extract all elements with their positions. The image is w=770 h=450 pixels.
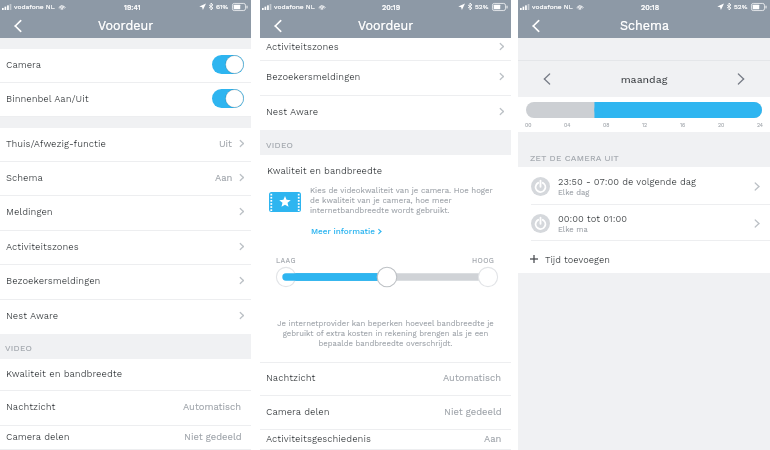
staticText: Niet gedeeld bbox=[444, 406, 502, 417]
staticText: Thuis/Afwezig-functie bbox=[6, 138, 106, 149]
staticText: 19:41 bbox=[124, 3, 141, 11]
staticText: Automatisch bbox=[183, 401, 242, 412]
staticText: Voordeur bbox=[358, 18, 414, 33]
button[interactable]: Back bbox=[260, 13, 296, 38]
staticText: Camera delen bbox=[6, 431, 70, 442]
staticText: Nachtzicht bbox=[6, 401, 56, 412]
button[interactable]: Binnenbel Aan/Uit bbox=[0, 83, 251, 117]
staticText: Schema bbox=[6, 172, 43, 183]
staticText: Schema bbox=[620, 18, 669, 33]
button[interactable]: Back bbox=[518, 13, 554, 38]
staticText: Meer informatie bbox=[311, 226, 375, 236]
button[interactable]: Back bbox=[0, 13, 36, 38]
button[interactable]: Activiteitsgeschiedenis bbox=[260, 430, 511, 450]
staticText: Kies de videokwaliteit van je camera. Ho… bbox=[310, 186, 503, 215]
staticText: 52% bbox=[734, 3, 748, 11]
staticText: maandag bbox=[576, 73, 712, 85]
button[interactable]: Meldingen bbox=[0, 196, 251, 231]
button[interactable]: Nachtzicht bbox=[260, 363, 511, 396]
staticText: 16 bbox=[680, 122, 686, 128]
button[interactable]: Bezoekersmeldingen bbox=[0, 265, 251, 300]
button[interactable]: Bezoekersmeldingen bbox=[260, 61, 511, 96]
staticText: Aan bbox=[215, 172, 233, 183]
staticText: Bezoekersmeldingen bbox=[6, 275, 101, 286]
button[interactable]: Kwaliteit en bandbreedte bbox=[0, 359, 251, 391]
staticText: Aan bbox=[484, 433, 502, 444]
staticText: Nest Aware bbox=[266, 106, 319, 117]
staticText: vodafone NL bbox=[14, 3, 55, 11]
staticText: vodafone NL bbox=[274, 3, 315, 11]
button[interactable]: Meer informatie bbox=[311, 226, 384, 236]
staticText: 20 bbox=[718, 122, 725, 128]
staticText: Je internetprovider kan beperken hoeveel… bbox=[275, 319, 496, 348]
staticText: 00:00 tot 01:00 bbox=[558, 213, 628, 224]
staticText: ZET DE CAMERA UIT bbox=[530, 153, 619, 163]
button[interactable]: Camera delen bbox=[260, 396, 511, 430]
button[interactable]: Tijd toevoegen bbox=[518, 241, 770, 273]
button[interactable]: Schema bbox=[0, 162, 251, 196]
staticText: vodafone NL bbox=[532, 3, 573, 11]
staticText: 61% bbox=[216, 3, 229, 11]
staticText: Activiteitszones bbox=[266, 41, 339, 52]
staticText: Tijd toevoegen bbox=[545, 254, 611, 265]
button[interactable]: Nachtzicht bbox=[0, 391, 251, 426]
staticText: 20:18 bbox=[641, 3, 660, 11]
staticText: VIDEO bbox=[5, 343, 33, 353]
button[interactable]: Previous day bbox=[518, 61, 576, 97]
staticText: Automatisch bbox=[443, 372, 502, 383]
button[interactable]: Activiteitszones bbox=[0, 231, 251, 265]
button[interactable]: Nest Aware bbox=[0, 300, 251, 334]
staticText: 12 bbox=[642, 122, 648, 128]
staticText: 00 bbox=[525, 122, 532, 128]
button[interactable]: Next day bbox=[712, 61, 770, 97]
staticText: LAAG bbox=[276, 256, 296, 264]
button[interactable]: Nest Aware bbox=[260, 96, 511, 130]
staticText: Uit bbox=[219, 138, 233, 149]
staticText: 24 bbox=[757, 122, 764, 128]
staticText: VIDEO bbox=[266, 140, 294, 150]
staticText: 23:50 - 07:00 de volgende dag bbox=[558, 176, 697, 187]
button[interactable]: Camera delen bbox=[0, 426, 251, 450]
staticText: Elke ma bbox=[558, 225, 588, 234]
staticText: HOOG bbox=[472, 256, 495, 264]
button[interactable]: Activiteitszones bbox=[260, 38, 511, 61]
staticText: Camera bbox=[6, 59, 42, 70]
staticText: Binnenbel Aan/Uit bbox=[6, 93, 89, 104]
staticText: Kwaliteit en bandbreedte bbox=[6, 368, 123, 379]
staticText: Voordeur bbox=[98, 18, 154, 33]
staticText: 04 bbox=[564, 122, 571, 128]
button[interactable]: 23:50 - 07:00 de volgende dag bbox=[518, 167, 770, 205]
staticText: Nest Aware bbox=[6, 310, 59, 321]
button[interactable]: Camera bbox=[0, 49, 251, 83]
staticText: 20:19 bbox=[382, 3, 401, 11]
staticText: Meldingen bbox=[6, 206, 53, 217]
staticText: 08 bbox=[603, 122, 610, 128]
staticText: Camera delen bbox=[266, 406, 330, 417]
button[interactable]: 00:00 tot 01:00 bbox=[518, 205, 770, 241]
staticText: Niet gedeeld bbox=[184, 431, 242, 442]
staticText: Elke dag bbox=[558, 188, 590, 197]
staticText: Kwaliteit en bandbreedte bbox=[267, 165, 383, 176]
staticText: 52% bbox=[475, 3, 489, 11]
staticText: Activiteitsgeschiedenis bbox=[266, 433, 371, 444]
staticText: Nachtzicht bbox=[266, 372, 316, 383]
staticText: Bezoekersmeldingen bbox=[266, 71, 361, 82]
staticText: Activiteitszones bbox=[6, 241, 79, 252]
button[interactable]: Thuis/Afwezig-functie bbox=[0, 128, 251, 162]
